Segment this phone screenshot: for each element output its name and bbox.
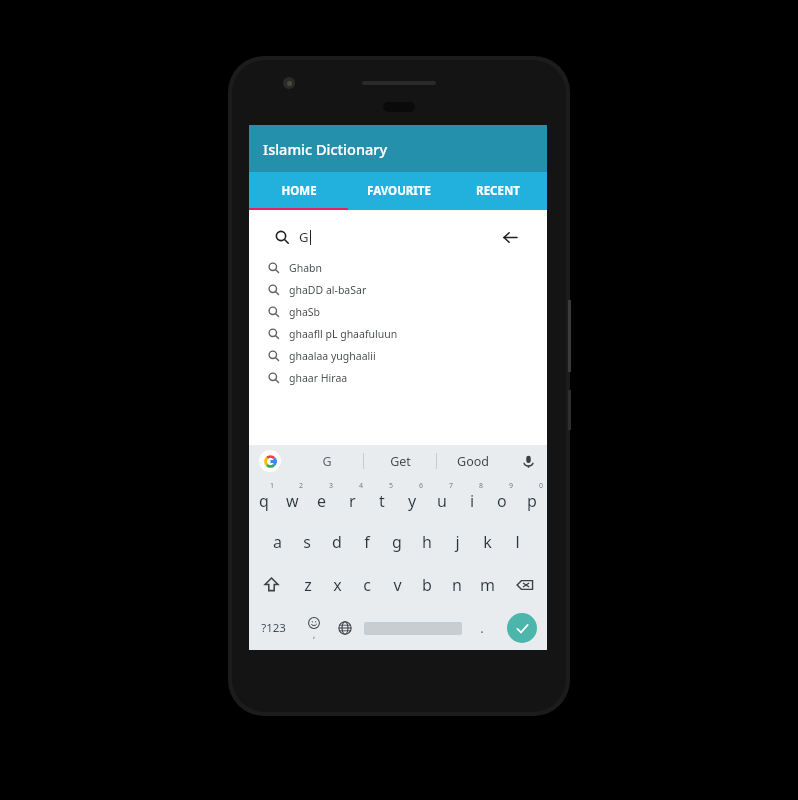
button[interactable]: FAVOURITE bbox=[349, 172, 448, 210]
staticText: r bbox=[349, 490, 356, 512]
button[interactable]: z bbox=[293, 563, 322, 606]
staticText: u bbox=[437, 490, 447, 512]
staticText: ghaalaa yughaalii bbox=[289, 349, 376, 363]
button[interactable]: Backspace bbox=[502, 563, 547, 606]
staticText: Ghabn bbox=[289, 261, 322, 275]
staticText: l bbox=[515, 531, 520, 553]
staticText: HOME bbox=[281, 183, 317, 199]
staticText: G bbox=[299, 228, 309, 246]
button[interactable]: p bbox=[517, 477, 547, 520]
button[interactable]: HOME bbox=[249, 172, 349, 210]
button[interactable]: x bbox=[322, 563, 352, 606]
staticText: FAVOURITE bbox=[367, 183, 431, 199]
staticText: 8 bbox=[479, 481, 484, 491]
staticText: y bbox=[408, 490, 417, 512]
button[interactable]: G bbox=[291, 445, 363, 477]
button[interactable]: ghaSb bbox=[257, 301, 539, 323]
staticText: f bbox=[364, 531, 370, 553]
button[interactable]: Ghabn bbox=[257, 257, 539, 279]
button[interactable]: RECENT bbox=[448, 172, 547, 210]
staticText: t bbox=[379, 490, 385, 512]
button[interactable]: r bbox=[337, 477, 367, 520]
button[interactable]: a bbox=[263, 520, 292, 563]
button[interactable]: Back bbox=[499, 226, 521, 248]
staticText: 3 bbox=[329, 481, 334, 491]
button[interactable]: Good bbox=[437, 445, 509, 477]
button[interactable]: t bbox=[367, 477, 397, 520]
button[interactable]: v bbox=[382, 563, 412, 606]
button[interactable]: k bbox=[472, 520, 502, 563]
staticText: i bbox=[470, 490, 475, 512]
button[interactable]: u bbox=[427, 477, 457, 520]
staticText: x bbox=[333, 574, 342, 596]
button[interactable]: ghaafll pL ghaafuluun bbox=[257, 323, 539, 345]
staticText: g bbox=[392, 531, 402, 553]
staticText: Good bbox=[457, 453, 489, 470]
button[interactable]: f bbox=[352, 520, 382, 563]
button[interactable]: ghaar Hiraa bbox=[257, 367, 539, 389]
staticText: 1 bbox=[270, 481, 275, 491]
staticText: a bbox=[273, 531, 282, 553]
button[interactable]: Shift bbox=[249, 563, 293, 606]
button[interactable]: i bbox=[457, 477, 487, 520]
staticText: q bbox=[259, 490, 269, 512]
button[interactable]: m bbox=[472, 563, 502, 606]
button[interactable]: q bbox=[249, 477, 278, 520]
button[interactable] bbox=[360, 606, 466, 650]
staticText: Get bbox=[390, 453, 411, 470]
staticText: 6 bbox=[419, 481, 424, 491]
button[interactable]: Change language bbox=[329, 606, 360, 650]
staticText: j bbox=[455, 531, 460, 553]
button[interactable]: Emoji bbox=[298, 606, 329, 650]
button[interactable]: . bbox=[466, 606, 497, 650]
button[interactable]: n bbox=[442, 563, 472, 606]
staticText: k bbox=[483, 531, 492, 553]
staticText: e bbox=[317, 490, 327, 512]
button[interactable]: G bbox=[266, 219, 530, 255]
button[interactable]: c bbox=[352, 563, 382, 606]
staticText: ghaafll pL ghaafuluun bbox=[289, 327, 398, 341]
button[interactable]: h bbox=[412, 520, 442, 563]
button[interactable] bbox=[249, 445, 291, 477]
staticText: G bbox=[322, 453, 332, 470]
button[interactable]: j bbox=[442, 520, 472, 563]
button[interactable]: Get bbox=[364, 445, 436, 477]
staticText: ghaar Hiraa bbox=[289, 371, 348, 385]
staticText: m bbox=[480, 574, 495, 596]
button[interactable]: s bbox=[292, 520, 322, 563]
staticText: , bbox=[313, 629, 316, 640]
staticText: Islamic Dictionary bbox=[263, 139, 388, 159]
button[interactable]: e bbox=[307, 477, 337, 520]
staticText: 5 bbox=[389, 481, 394, 491]
staticText: w bbox=[286, 490, 299, 512]
button[interactable]: b bbox=[412, 563, 442, 606]
staticText: ghaDD al-baSar bbox=[289, 283, 367, 297]
button[interactable]: g bbox=[382, 520, 412, 563]
staticText: 7 bbox=[449, 481, 454, 491]
button[interactable]: y bbox=[397, 477, 427, 520]
button[interactable]: ?123 bbox=[249, 606, 298, 650]
button[interactable]: Voice input bbox=[509, 445, 547, 477]
staticText: n bbox=[452, 574, 462, 596]
staticText: p bbox=[527, 490, 537, 512]
button[interactable]: w bbox=[278, 477, 307, 520]
staticText: ?123 bbox=[261, 620, 286, 636]
staticText: o bbox=[497, 490, 507, 512]
button[interactable]: o bbox=[487, 477, 517, 520]
staticText: 4 bbox=[359, 481, 364, 491]
staticText: h bbox=[422, 531, 432, 553]
button[interactable]: d bbox=[322, 520, 352, 563]
staticText: d bbox=[332, 531, 342, 553]
button[interactable]: ghaDD al-baSar bbox=[257, 279, 539, 301]
staticText: . bbox=[480, 619, 484, 637]
button[interactable]: Enter bbox=[497, 606, 547, 650]
staticText: v bbox=[393, 574, 402, 596]
staticText: 2 bbox=[299, 481, 304, 491]
staticText: z bbox=[304, 574, 312, 596]
button[interactable]: l bbox=[502, 520, 532, 563]
staticText: ghaSb bbox=[289, 305, 321, 319]
staticText: s bbox=[303, 531, 311, 553]
staticText: 9 bbox=[509, 481, 514, 491]
button[interactable]: ghaalaa yughaalii bbox=[257, 345, 539, 367]
staticText: 0 bbox=[539, 481, 544, 491]
